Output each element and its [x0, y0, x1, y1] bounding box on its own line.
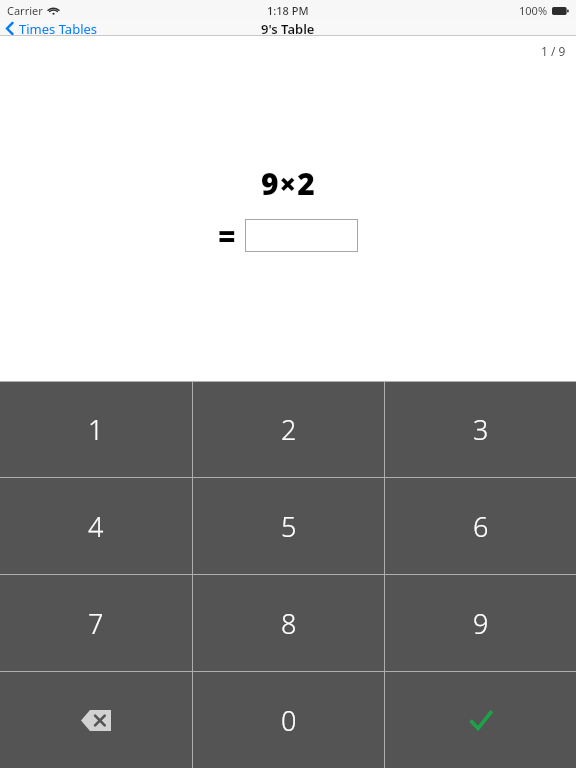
staticText: 1 / 9 [541, 43, 566, 59]
staticText: 5 [281, 508, 297, 545]
button[interactable]: 0 [193, 672, 384, 768]
button[interactable]: Times Tables [0, 20, 106, 36]
staticText: 0 [281, 702, 297, 739]
staticText: 9's Table [261, 20, 315, 36]
staticText: Carrier [7, 3, 43, 18]
button[interactable]: 6 [385, 478, 576, 574]
staticText: Times Tables [19, 20, 98, 36]
staticText: 2 [281, 411, 297, 448]
button[interactable]: 2 [193, 382, 384, 477]
staticText: 3 [473, 411, 489, 448]
button[interactable] [245, 219, 358, 252]
button[interactable]: 5 [193, 478, 384, 574]
button[interactable]: 8 [193, 575, 384, 671]
staticText: 1:18 PM [267, 3, 309, 18]
staticText: 9 [473, 605, 489, 642]
staticText: 6 [473, 508, 489, 545]
button[interactable]: 3 [385, 382, 576, 477]
staticText: 9×2 [261, 163, 316, 204]
button[interactable]: Backspace [0, 672, 192, 768]
button[interactable]: 4 [0, 478, 192, 574]
button[interactable]: 9 [385, 575, 576, 671]
staticText: 8 [281, 605, 297, 642]
button[interactable]: 1 [0, 382, 192, 477]
button[interactable]: Submit answer [385, 672, 576, 768]
staticText: 4 [88, 508, 104, 545]
button[interactable]: 7 [0, 575, 192, 671]
staticText: 1 [88, 411, 104, 448]
staticText: = [218, 215, 236, 256]
staticText: 7 [88, 605, 104, 642]
staticText: 100% [519, 3, 548, 18]
